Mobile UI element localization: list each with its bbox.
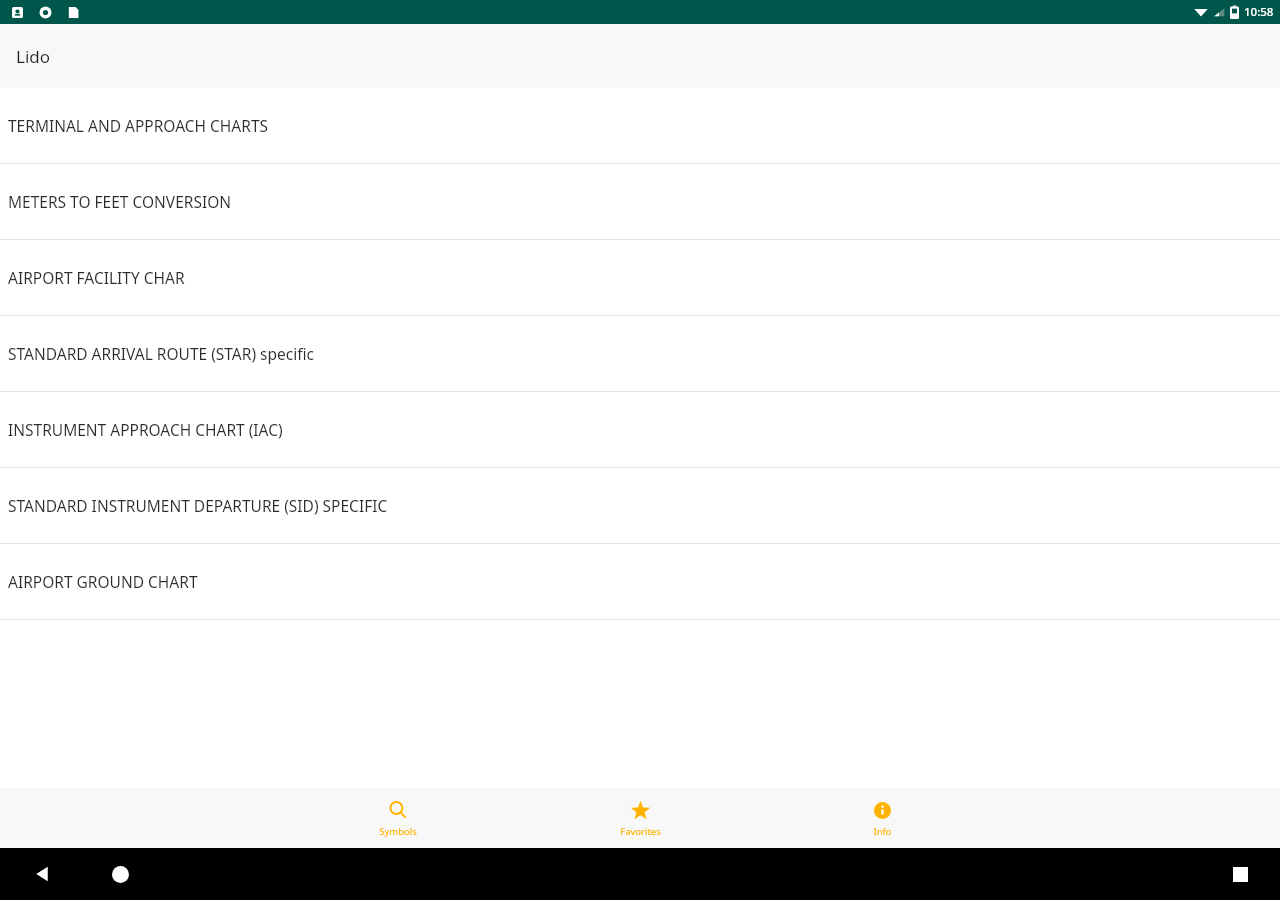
staticText: INSTRUMENT APPROACH CHART (IAC) xyxy=(8,419,283,440)
button[interactable]: STANDARD ARRIVAL ROUTE (STAR) specific xyxy=(0,316,1280,392)
button[interactable]: Favorites xyxy=(597,788,683,848)
staticText: METERS TO FEET CONVERSION xyxy=(8,191,232,212)
button[interactable]: Home xyxy=(100,854,140,894)
staticText: AIRPORT FACILITY CHAR xyxy=(8,267,185,288)
staticText: Info xyxy=(873,825,892,838)
staticText: 10:58 xyxy=(1244,4,1274,20)
button[interactable]: STANDARD INSTRUMENT DEPARTURE (SID) SPEC… xyxy=(0,468,1280,544)
button[interactable]: AIRPORT GROUND CHART xyxy=(0,544,1280,620)
other: Info xyxy=(874,802,891,819)
button[interactable]: INSTRUMENT APPROACH CHART (IAC) xyxy=(0,392,1280,468)
staticText: Favorites xyxy=(620,825,661,838)
button[interactable]: Info xyxy=(839,788,925,848)
button[interactable]: Recent apps xyxy=(1220,854,1260,894)
staticText: Symbols xyxy=(379,825,417,838)
button[interactable]: METERS TO FEET CONVERSION xyxy=(0,164,1280,240)
button[interactable]: AIRPORT FACILITY CHAR xyxy=(0,240,1280,316)
staticText: STANDARD INSTRUMENT DEPARTURE (SID) SPEC… xyxy=(8,495,388,516)
button[interactable]: Symbols xyxy=(355,788,441,848)
staticText: AIRPORT GROUND CHART xyxy=(8,571,198,592)
staticText: STANDARD ARRIVAL ROUTE (STAR) specific xyxy=(8,343,314,364)
staticText: Lido xyxy=(16,45,51,68)
button[interactable]: TERMINAL AND APPROACH CHARTS xyxy=(0,88,1280,164)
staticText: TERMINAL AND APPROACH CHARTS xyxy=(8,115,269,136)
button[interactable]: Back xyxy=(22,854,62,894)
